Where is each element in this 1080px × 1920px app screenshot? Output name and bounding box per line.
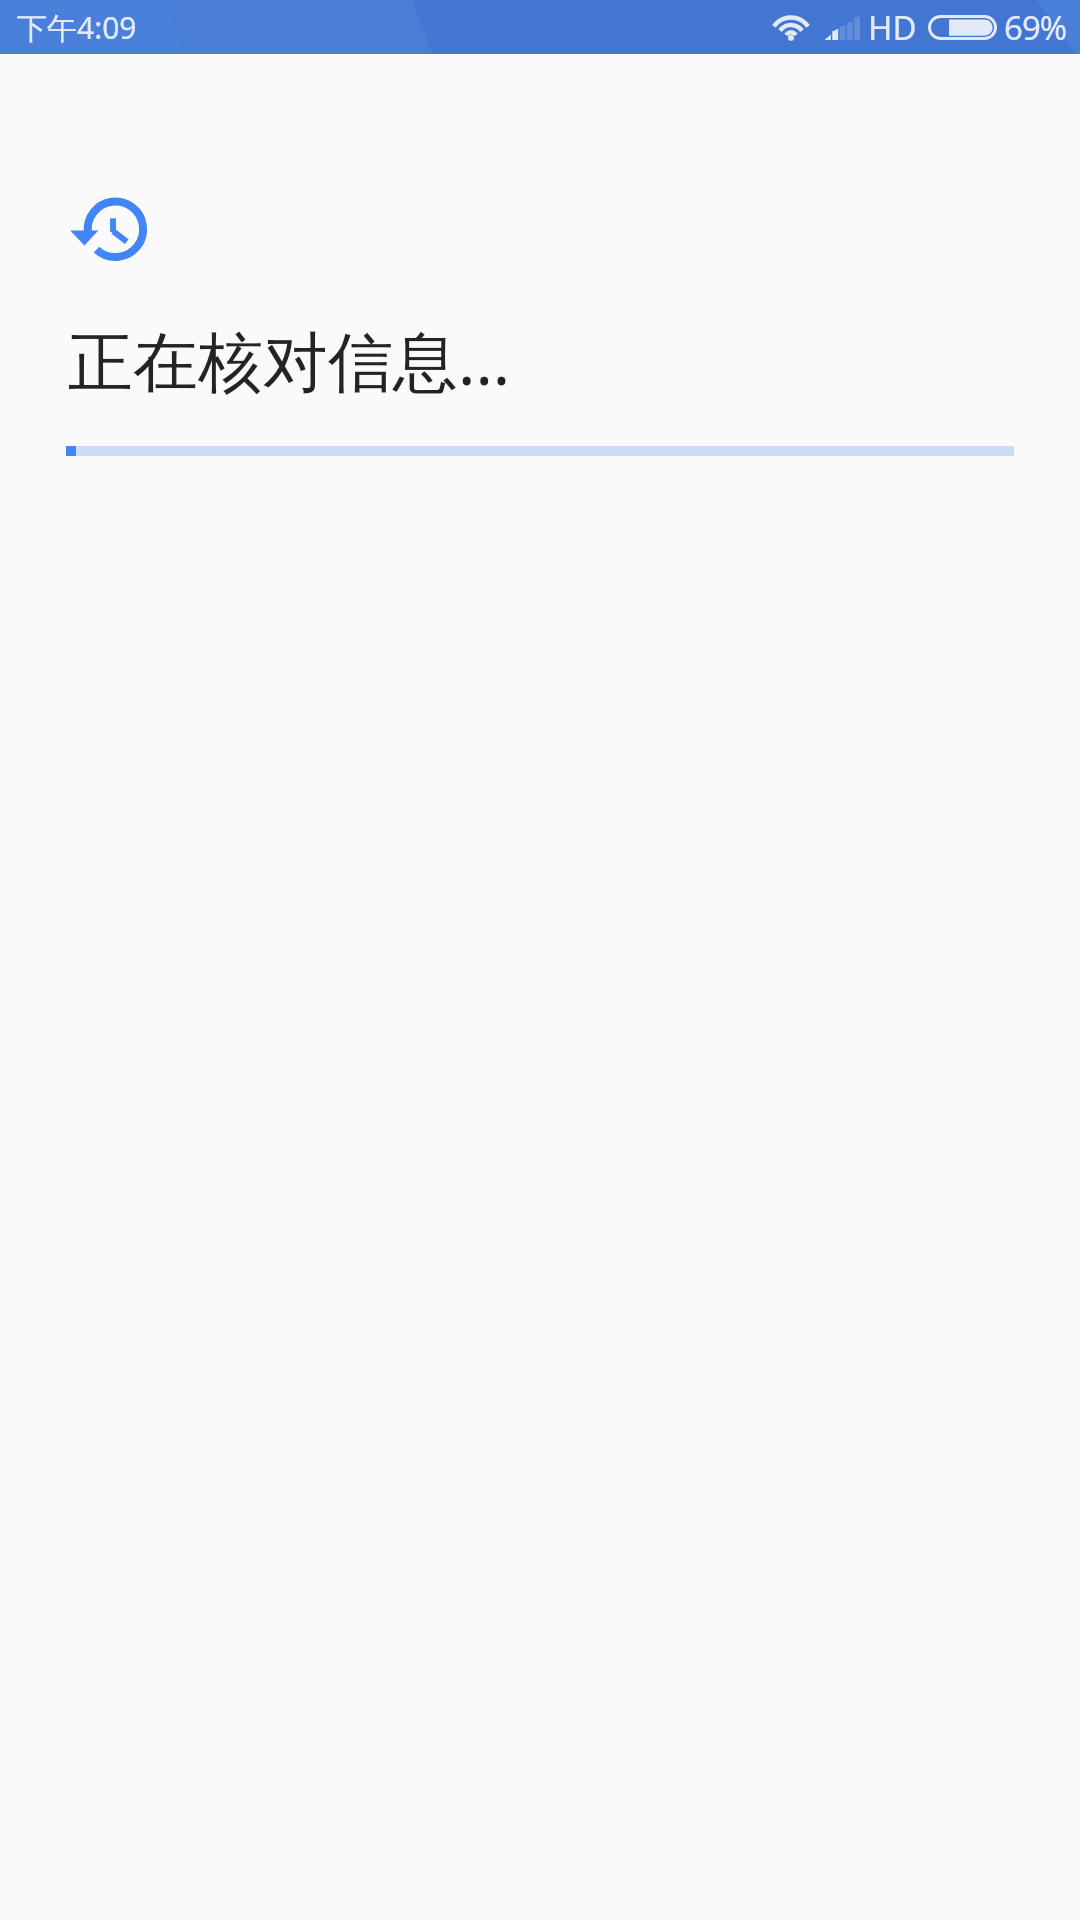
staticText: 正在核对信息... (68, 316, 511, 405)
staticText: HD (868, 5, 917, 50)
staticText: 下午4:09 (17, 7, 137, 48)
button[interactable]: History (70, 198, 170, 298)
staticText: 69% (1004, 5, 1067, 50)
